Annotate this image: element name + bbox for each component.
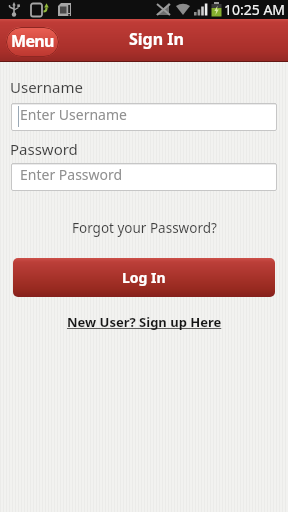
staticText: Menu — [11, 30, 54, 52]
button[interactable]: Forgot your Password? — [72, 219, 217, 237]
staticText: Password — [10, 139, 78, 159]
button[interactable]: New User? Sign up Here — [67, 313, 222, 331]
staticText: Sign In — [129, 28, 184, 50]
button[interactable]: Enter Password — [11, 163, 277, 191]
staticText: Log In — [122, 268, 166, 287]
button[interactable]: Enter Username — [11, 103, 277, 131]
staticText: Enter Username — [20, 105, 127, 124]
button[interactable]: Menu — [6, 27, 59, 57]
staticText: Enter Password — [20, 165, 123, 184]
staticText: 10:25 AM — [224, 0, 286, 19]
button[interactable]: Log In — [13, 258, 275, 297]
staticText: Username — [10, 77, 83, 97]
